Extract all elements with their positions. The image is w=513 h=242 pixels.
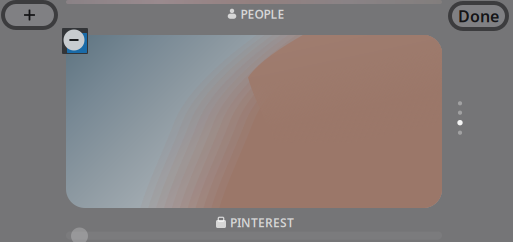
staticText: Done <box>458 5 499 27</box>
button[interactable]: New Tab <box>3 2 56 28</box>
button[interactable]: Done <box>450 3 507 29</box>
staticText: PINTEREST <box>230 214 294 230</box>
button[interactable]: Close Tab <box>62 28 88 54</box>
staticText: PEOPLE <box>240 6 284 22</box>
